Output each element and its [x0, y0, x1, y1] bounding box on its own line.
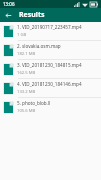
button[interactable]: 2. slovakia.osm.map — [0, 41, 101, 59]
staticText: 1 GB — [17, 32, 27, 38]
staticText: 1. VID_20190717_223457.mp4 — [17, 24, 82, 30]
staticText: 5. photo_blob.ll — [17, 100, 51, 106]
button[interactable]: 4. VID_20181230_184146.mp4 — [0, 79, 101, 97]
staticText: 162.5 MB — [17, 70, 36, 76]
staticText: 182.1 MB — [17, 51, 36, 57]
staticText: 133.2 MB — [17, 89, 36, 95]
staticText: 4. VID_20181230_184146.mp4 — [17, 81, 82, 87]
staticText: 3. VID_20181230_184815.mp4 — [17, 62, 82, 68]
button[interactable]: 1. VID_20190717_223457.mp4 — [0, 22, 101, 40]
button[interactable]: 5. photo_blob.ll — [0, 98, 101, 116]
button[interactable]: Back — [3, 10, 14, 21]
staticText: Results — [19, 10, 45, 20]
staticText: 105.6 MB — [17, 108, 36, 114]
staticText: 2. slovakia.osm.map — [17, 43, 61, 49]
staticText: 13:06 — [3, 1, 15, 7]
button[interactable]: 3. VID_20181230_184815.mp4 — [0, 60, 101, 78]
